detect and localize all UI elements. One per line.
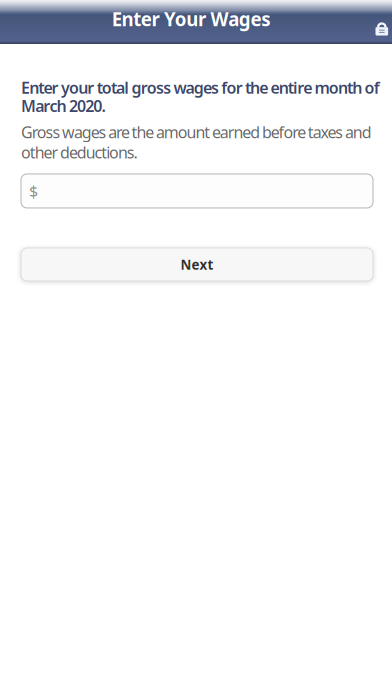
button[interactable]: Next: [21, 248, 384, 281]
staticText: Next: [180, 256, 213, 273]
staticText: Enter Your Wages: [112, 7, 270, 31]
button[interactable]: $: [21, 174, 384, 208]
button[interactable]: Secure connection: [365, 14, 392, 41]
staticText: Enter your total gross wages for the ent…: [21, 77, 380, 116]
staticText: Gross wages are the amount earned before…: [21, 121, 372, 163]
staticText: $: [29, 180, 38, 202]
